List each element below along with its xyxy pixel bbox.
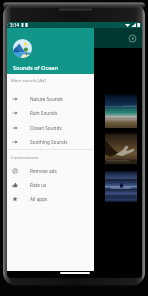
- button[interactable]: Remove ads: [7, 164, 94, 178]
- staticText: More sounds [Ad]: [11, 78, 46, 84]
- staticText: All apps: [30, 196, 48, 202]
- button[interactable]: Nature Sounds: [7, 92, 94, 106]
- staticText: Rate us: [30, 182, 47, 188]
- button[interactable]: Ocean Sounds: [7, 121, 94, 135]
- button[interactable]: [105, 171, 137, 202]
- staticText: Remove ads: [30, 168, 57, 174]
- staticText: Nature Sounds: [30, 96, 63, 102]
- staticText: Sounds of Ocean: [13, 64, 59, 72]
- button[interactable]: [105, 94, 137, 128]
- staticText: Ocean Sounds: [30, 125, 62, 131]
- button[interactable]: Rain Sounds: [7, 106, 94, 120]
- button[interactable]: All apps: [7, 192, 94, 206]
- staticText: 3:14: [10, 22, 20, 28]
- button[interactable]: [105, 133, 137, 164]
- staticText: Rain Sounds: [30, 110, 58, 116]
- staticText: Communicate: [11, 155, 39, 161]
- button[interactable]: Rate us: [7, 178, 94, 192]
- staticText: Soothing Sounds: [30, 139, 68, 145]
- button[interactable]: Sleep timer: [128, 34, 137, 43]
- button[interactable]: Soothing Sounds: [7, 135, 94, 149]
